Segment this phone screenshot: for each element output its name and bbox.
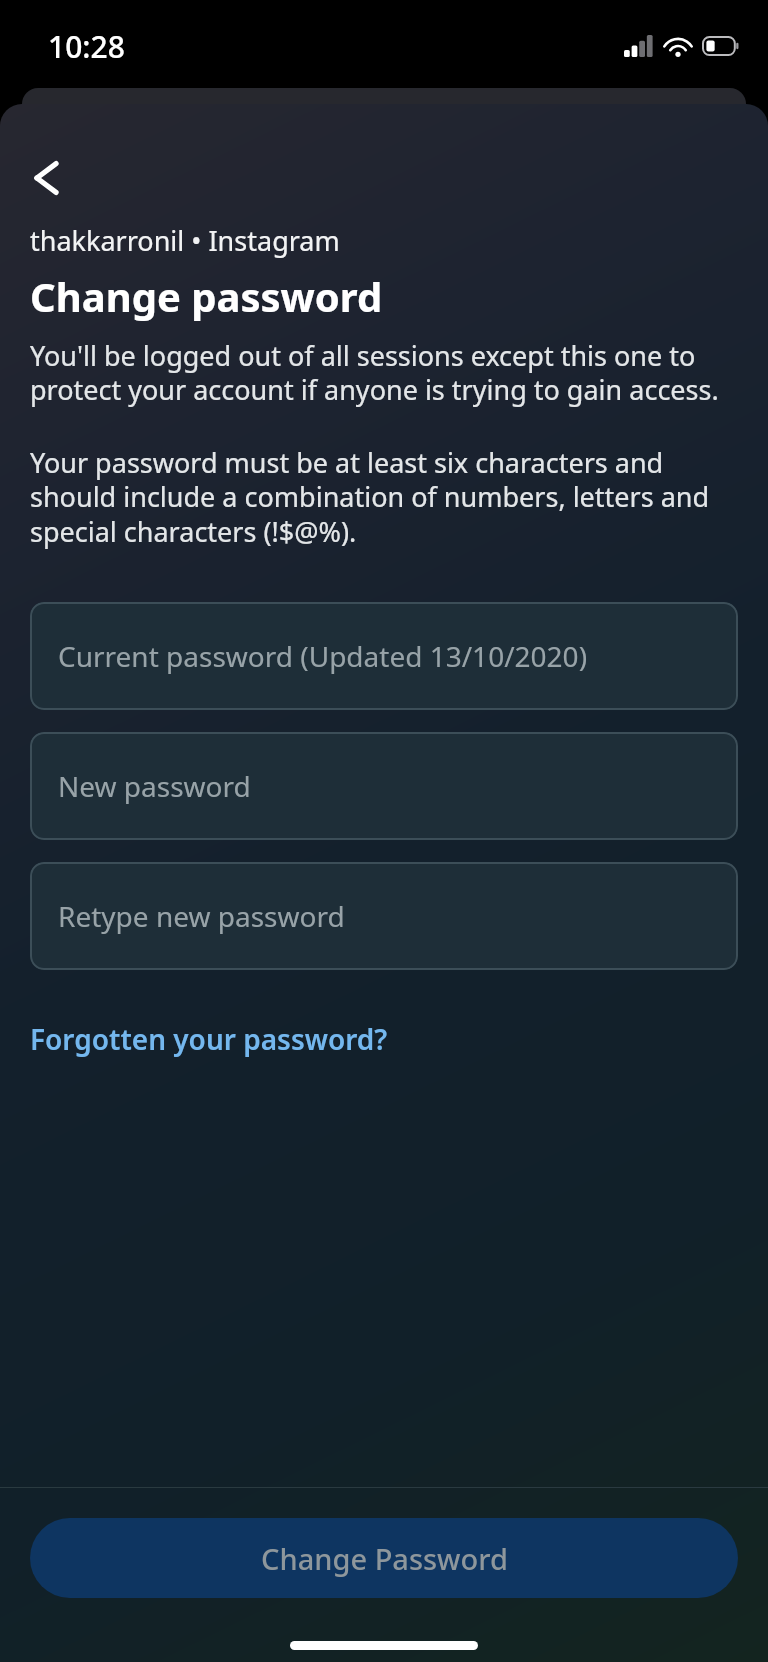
staticText: Change Password (261, 1539, 508, 1578)
button[interactable]: Forgotten your password? (30, 1016, 388, 1062)
staticText: 10:28 (48, 26, 125, 67)
staticText: Retype new password (58, 897, 345, 935)
staticText: You'll be logged out of all sessions exc… (30, 337, 738, 408)
button[interactable]: Current password (Updated 13/10/2020) (30, 602, 738, 710)
staticText: Change password (30, 269, 383, 323)
button[interactable]: Back (16, 148, 76, 208)
staticText: New password (58, 767, 251, 805)
button[interactable]: Retype new password (30, 862, 738, 970)
staticText: Your password must be at least six chara… (30, 444, 738, 550)
staticText: thakkarronil • Instagram (30, 222, 340, 259)
staticText: Forgotten your password? (30, 1020, 388, 1058)
staticText: Current password (Updated 13/10/2020) (58, 637, 588, 675)
button[interactable]: New password (30, 732, 738, 840)
button[interactable]: Change Password (30, 1518, 738, 1598)
